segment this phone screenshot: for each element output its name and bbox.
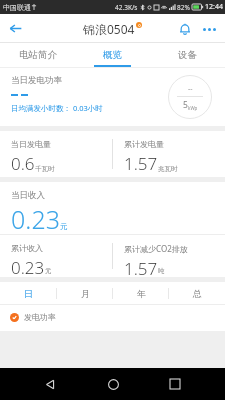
button[interactable]: Back (37, 371, 63, 397)
staticText: 42.3K/s (115, 3, 138, 12)
staticText: 设备 (178, 49, 197, 61)
button[interactable]: 总 (169, 282, 225, 304)
button[interactable]: Recents (162, 371, 188, 397)
staticText: 当日发电功率 (11, 75, 62, 86)
staticText: 年 (137, 288, 146, 299)
button[interactable]: 累计减少CO2排放 (113, 235, 225, 277)
staticText: 概览 (103, 49, 122, 61)
staticText: 当日发电量 (11, 139, 51, 149)
staticText: 月 (81, 288, 90, 299)
staticText: 累计发电量 (124, 139, 164, 149)
button[interactable]: Home (100, 371, 126, 397)
staticText: -- (188, 84, 193, 94)
button[interactable]: Notifications (173, 17, 197, 41)
staticText: kWp (188, 105, 198, 111)
button[interactable]: 年 (113, 282, 169, 304)
button[interactable]: 电站简介 (0, 43, 75, 67)
staticText: 日 (24, 288, 33, 299)
button[interactable]: 当日发电量 (0, 131, 112, 175)
staticText: 1.57 (124, 152, 158, 175)
staticText: 日均满发小时数： 0.03小时 (11, 103, 103, 113)
button[interactable]: 日 (0, 282, 57, 304)
staticText: 0.6 (11, 152, 35, 175)
button[interactable]: 设备 (150, 43, 225, 67)
button[interactable]: 累计发电量 (113, 131, 225, 175)
staticText: 0.23 (11, 256, 45, 277)
staticText: 千瓦时 (35, 165, 55, 173)
button[interactable]: 发电功率 (10, 312, 56, 322)
staticText: 累计减少CO2排放 (124, 243, 188, 254)
staticText: 0.23 (11, 202, 60, 234)
staticText: 锦浪0504 (83, 21, 135, 37)
staticText: 中国联通 (3, 3, 31, 12)
button[interactable]: 当日收入 (0, 182, 225, 234)
staticText: 82% (177, 3, 190, 12)
button[interactable]: 概览 (75, 43, 150, 67)
staticText: 5 (183, 99, 188, 111)
staticText: 当日收入 (11, 190, 45, 201)
button[interactable]: 月 (57, 282, 113, 304)
staticText: 12:44 (205, 2, 223, 12)
staticText: 电站简介 (19, 49, 57, 61)
staticText: 总 (193, 288, 202, 299)
staticText: 1.57 (124, 257, 158, 277)
button[interactable]: More options (197, 17, 221, 41)
button[interactable]: Back (0, 14, 30, 43)
staticText: 兆瓦时 (158, 165, 178, 173)
button[interactable]: 累计收入 (0, 235, 112, 277)
staticText: 元 (60, 222, 68, 231)
staticText: 发电功率 (24, 312, 56, 322)
staticText: 累计收入 (11, 243, 43, 253)
staticText: 元 (45, 267, 52, 275)
staticText: 吨 (158, 267, 165, 275)
